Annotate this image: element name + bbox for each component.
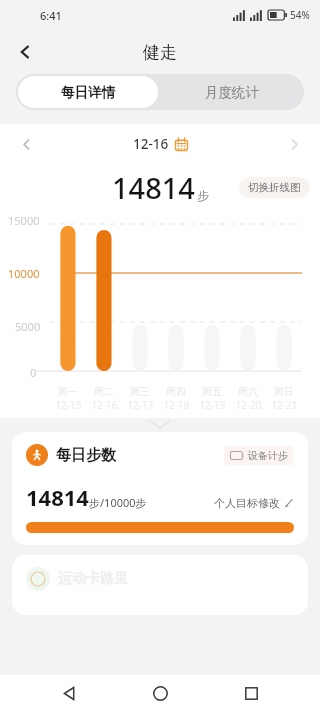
button[interactable]: 切换折线图 bbox=[239, 177, 310, 198]
button[interactable]: Back bbox=[47, 675, 91, 711]
staticText: 周五 bbox=[202, 385, 222, 398]
staticText: 周三 bbox=[130, 385, 150, 398]
staticText: 5000 bbox=[15, 319, 41, 334]
staticText: 0 bbox=[30, 365, 37, 380]
button[interactable]: 每日详情 bbox=[18, 76, 158, 108]
button[interactable]: 个人目标修改 bbox=[214, 496, 294, 512]
staticText: 周二 bbox=[94, 385, 114, 398]
button[interactable]: Next day bbox=[278, 128, 310, 160]
staticText: 6:41 bbox=[40, 8, 62, 23]
staticText: 健走 bbox=[143, 42, 177, 63]
staticText: 周日 bbox=[274, 385, 294, 398]
staticText: 周四 bbox=[166, 385, 186, 398]
button[interactable]: 月度统计 bbox=[160, 74, 304, 110]
button[interactable]: 每日步数 bbox=[12, 432, 308, 545]
staticText: 步 bbox=[197, 188, 209, 203]
staticText: 15000 bbox=[8, 213, 40, 228]
staticText: 14814 bbox=[112, 168, 195, 207]
staticText: 周六 bbox=[238, 385, 258, 398]
staticText: 54% bbox=[290, 8, 310, 22]
staticText: 12-16 bbox=[133, 135, 169, 153]
staticText: 个人目标修改 bbox=[214, 496, 280, 510]
staticText: 设备计步 bbox=[248, 449, 288, 462]
staticText: 12-20 bbox=[235, 398, 262, 412]
staticText: 运动卡路里 bbox=[58, 570, 128, 588]
button[interactable]: Back bbox=[6, 33, 44, 71]
button[interactable]: Pick date bbox=[175, 138, 188, 151]
button[interactable]: 设备计步 bbox=[224, 446, 294, 465]
button[interactable]: Recents bbox=[229, 675, 273, 711]
button[interactable]: Home bbox=[138, 675, 182, 711]
staticText: 10000 bbox=[8, 266, 40, 281]
staticText: 12-18 bbox=[163, 398, 190, 412]
staticText: 步/10000步 bbox=[89, 495, 147, 510]
button[interactable]: Previous day bbox=[10, 128, 42, 160]
staticText: 14814 bbox=[26, 482, 89, 512]
staticText: 每日详情 bbox=[61, 84, 115, 101]
staticText: 12-16 bbox=[91, 398, 118, 412]
button[interactable]: 运动卡路里 bbox=[12, 555, 308, 615]
staticText: 12-17 bbox=[127, 398, 154, 412]
staticText: 周一 bbox=[58, 385, 78, 398]
staticText: 切换折线图 bbox=[248, 181, 301, 194]
staticText: 12-21 bbox=[271, 398, 298, 412]
staticText: 月度统计 bbox=[205, 84, 259, 101]
staticText: 12-15 bbox=[55, 398, 82, 412]
staticText: 12-19 bbox=[199, 398, 226, 412]
staticText: 每日步数 bbox=[56, 446, 116, 465]
